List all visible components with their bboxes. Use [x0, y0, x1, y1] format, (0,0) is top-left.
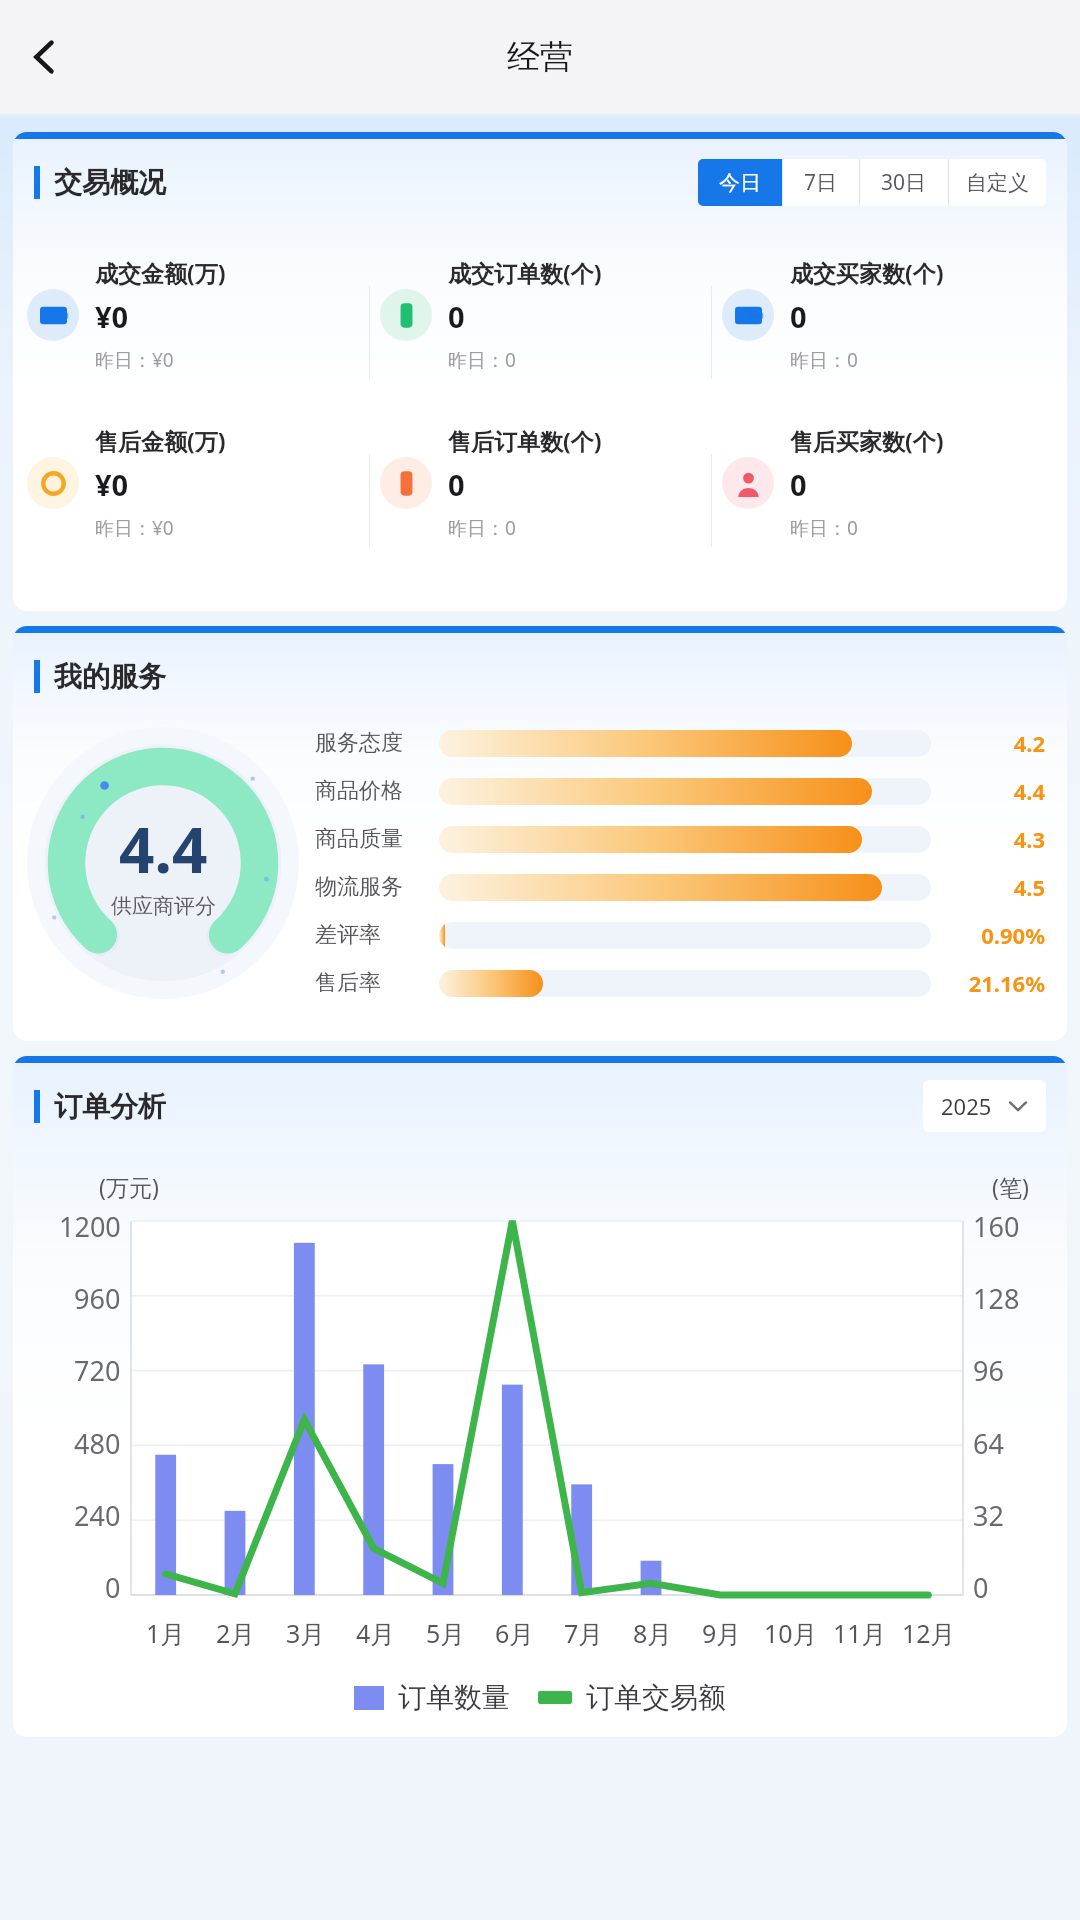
staticText: 交易概况	[54, 165, 166, 200]
staticText: 0	[105, 1569, 121, 1606]
staticText: 160	[973, 1208, 1020, 1245]
staticText: 3月	[286, 1616, 326, 1650]
staticText: 0.90%	[947, 920, 1045, 950]
staticText: 昨日：¥0	[95, 347, 174, 373]
staticText: 服务态度	[315, 729, 423, 757]
staticText: (笔)	[992, 1171, 1029, 1202]
staticText: 0	[448, 297, 465, 336]
button[interactable]: 自定义	[949, 159, 1046, 206]
button[interactable]: Back	[12, 24, 78, 90]
staticText: 差评率	[315, 921, 423, 949]
staticText: 今日	[719, 170, 761, 196]
staticText: 2025	[941, 1091, 992, 1121]
staticText: 4.5	[947, 872, 1045, 902]
staticText: 成交买家数(个)	[790, 257, 944, 288]
staticText: 成交金额(万)	[95, 257, 226, 288]
staticText: 480	[74, 1425, 121, 1462]
staticText: 订单交易额	[586, 1680, 726, 1715]
staticText: 128	[973, 1280, 1020, 1317]
staticText: 32	[973, 1497, 1004, 1534]
staticText: 昨日：0	[448, 515, 516, 541]
staticText: 售后金额(万)	[95, 425, 226, 456]
staticText: 12月	[902, 1616, 956, 1650]
button[interactable]: 今日	[698, 159, 782, 206]
staticText: 5月	[426, 1616, 466, 1650]
button[interactable]: 2025	[923, 1080, 1046, 1132]
staticText: ¥0	[95, 297, 129, 336]
staticText: 自定义	[966, 170, 1029, 196]
staticText: 10月	[764, 1616, 818, 1650]
staticText: 昨日：¥0	[95, 515, 174, 541]
staticText: 供应商评分	[111, 893, 216, 919]
staticText: 1200	[59, 1208, 121, 1245]
staticText: 订单分析	[54, 1089, 166, 1124]
staticText: 0	[790, 297, 807, 336]
staticText: 240	[74, 1497, 121, 1534]
staticText: 售后订单数(个)	[448, 425, 602, 456]
staticText: 30日	[881, 168, 927, 197]
staticText: 0	[973, 1569, 989, 1606]
staticText: 商品质量	[315, 825, 423, 853]
staticText: 7日	[804, 168, 838, 197]
staticText: 售后率	[315, 969, 423, 997]
staticText: 4.4	[119, 807, 208, 891]
staticText: 7月	[564, 1616, 604, 1650]
staticText: 4.4	[947, 776, 1045, 806]
staticText: 物流服务	[315, 873, 423, 901]
staticText: 昨日：0	[448, 347, 516, 373]
button[interactable]: 7日	[783, 159, 859, 206]
staticText: ¥0	[95, 465, 129, 504]
staticText: 64	[973, 1425, 1004, 1462]
staticText: 1月	[146, 1616, 186, 1650]
staticText: 0	[790, 465, 807, 504]
staticText: 960	[74, 1280, 121, 1317]
staticText: (万元)	[99, 1171, 159, 1202]
staticText: 4.3	[947, 824, 1045, 854]
staticText: 4.2	[947, 728, 1045, 758]
button[interactable]: 30日	[860, 159, 948, 206]
staticText: 6月	[495, 1616, 535, 1650]
staticText: 4月	[356, 1616, 396, 1650]
staticText: 昨日：0	[790, 347, 858, 373]
staticText: 商品价格	[315, 777, 423, 805]
staticText: 我的服务	[54, 659, 166, 694]
staticText: 订单数量	[398, 1680, 510, 1715]
staticText: 0	[448, 465, 465, 504]
staticText: 21.16%	[947, 968, 1045, 998]
staticText: 2月	[216, 1616, 256, 1650]
staticText: 8月	[633, 1616, 673, 1650]
staticText: 成交订单数(个)	[448, 257, 602, 288]
staticText: 经营	[507, 36, 573, 78]
staticText: 9月	[702, 1616, 742, 1650]
staticText: 售后买家数(个)	[790, 425, 944, 456]
staticText: 昨日：0	[790, 515, 858, 541]
staticText: 11月	[833, 1616, 887, 1650]
staticText: 96	[973, 1352, 1004, 1389]
staticText: 720	[74, 1352, 121, 1389]
